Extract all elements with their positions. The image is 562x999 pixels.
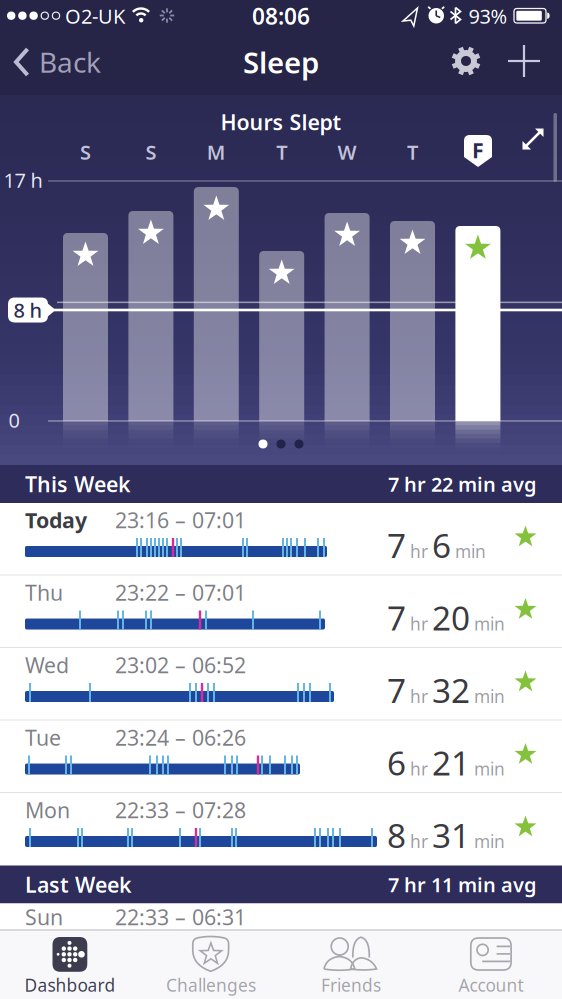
staticText: hr (410, 612, 428, 635)
staticText: min (474, 685, 505, 708)
button[interactable]: Sun (0, 903, 562, 929)
button[interactable]: Thu (0, 575, 562, 647)
staticText: 31 (432, 813, 470, 857)
staticText: hr (410, 830, 428, 853)
button[interactable] (502, 39, 546, 83)
button[interactable]: Account (421, 930, 561, 999)
staticText: 0 (8, 407, 19, 433)
staticText: Mon (25, 796, 70, 824)
staticText: Today (25, 506, 87, 534)
staticText: Thu (25, 578, 63, 607)
staticText: S (80, 139, 91, 165)
staticText: Hours Slept (220, 108, 341, 136)
button[interactable]: Challenges (141, 930, 281, 999)
staticText: Challenges (166, 973, 256, 996)
staticText: 08:06 (252, 1, 310, 31)
staticText: F (472, 136, 484, 164)
staticText: Tue (25, 723, 61, 752)
staticText: Friends (321, 973, 381, 996)
staticText: min (474, 612, 505, 635)
staticText: hr (410, 540, 428, 563)
staticText: 8 h (13, 297, 42, 323)
staticText: Dashboard (24, 973, 115, 996)
staticText: hr (410, 685, 428, 708)
staticText: Sleep (243, 42, 319, 81)
staticText: 7 (387, 523, 406, 567)
staticText: O2-UK (65, 3, 125, 29)
staticText: 20 (432, 595, 470, 640)
button[interactable] (444, 39, 488, 83)
staticText: Account (458, 973, 523, 996)
staticText: T (407, 139, 418, 165)
staticText: 22:33 – 06:31 (115, 903, 246, 931)
staticText: 22:33 – 07:28 (115, 796, 246, 824)
staticText: 7 hr 22 min avg (388, 471, 537, 497)
staticText: 23:16 – 07:01 (115, 506, 246, 534)
staticText: min (474, 830, 505, 853)
staticText: 23:02 – 06:52 (115, 651, 246, 679)
staticText: 23:22 – 07:01 (115, 578, 246, 607)
staticText: 7 hr 11 min avg (388, 871, 537, 898)
button[interactable]: Mon (0, 793, 562, 865)
staticText: S (145, 139, 156, 165)
staticText: 7 (387, 668, 406, 712)
staticText: 8 (387, 813, 406, 857)
staticText: Last Week (25, 870, 132, 899)
staticText: min (455, 540, 486, 563)
staticText: 93% (468, 3, 507, 29)
staticText: 21 (432, 740, 470, 785)
staticText: 7 (387, 595, 406, 640)
button[interactable]: Friends (281, 930, 421, 999)
button[interactable]: Back (13, 40, 123, 84)
staticText: min (474, 757, 505, 780)
staticText: 6 (432, 523, 451, 567)
staticText: hr (410, 757, 428, 780)
staticText: Wed (25, 651, 69, 679)
staticText: 6 (387, 740, 406, 785)
button[interactable]: Wed (0, 648, 562, 720)
button[interactable]: Tue (0, 720, 562, 792)
button[interactable] (513, 119, 553, 159)
button[interactable]: Dashboard (0, 930, 140, 999)
staticText: 23:24 – 06:26 (115, 723, 246, 752)
staticText: W (338, 139, 357, 165)
staticText: This Week (25, 470, 131, 498)
button[interactable]: Today (0, 503, 562, 575)
staticText: T (276, 139, 287, 165)
staticText: 32 (432, 668, 470, 712)
staticText: M (207, 139, 226, 165)
staticText: Back (39, 43, 101, 81)
staticText: 17 h (3, 167, 42, 193)
staticText: Sun (25, 903, 63, 931)
